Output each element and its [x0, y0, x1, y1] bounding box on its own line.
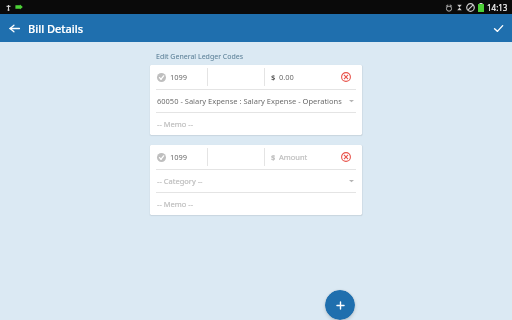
button[interactable]: Back: [0, 14, 28, 42]
button[interactable]: -- Memo --: [150, 193, 362, 215]
button[interactable]: 1099: [150, 65, 207, 89]
staticText: -- Category --: [157, 176, 349, 186]
staticText: $: [271, 72, 276, 82]
staticText: Edit General Ledger Codes: [156, 52, 244, 62]
button[interactable]: $: [265, 145, 335, 169]
button[interactable]: Add general ledger code: [325, 290, 355, 320]
button[interactable]: -- Category --: [150, 170, 362, 192]
staticText: -- Memo --: [157, 119, 194, 129]
button[interactable]: -- Memo --: [150, 113, 362, 135]
staticText: 60050 - Salary Expense : Salary Expense …: [157, 96, 349, 106]
staticText: Bill Details: [28, 21, 84, 36]
button[interactable]: 60050 - Salary Expense : Salary Expense …: [150, 90, 362, 112]
staticText: Amount: [279, 152, 308, 162]
staticText: $: [271, 152, 276, 162]
button[interactable]: Save: [484, 14, 512, 42]
staticText: 1099: [170, 152, 188, 162]
button[interactable]: 1099: [150, 145, 207, 169]
staticText: 0.00: [279, 72, 294, 82]
button[interactable]: Delete line: [335, 66, 357, 88]
staticText: 1099: [170, 72, 188, 82]
staticText: 14:13: [487, 2, 508, 13]
staticText: -- Memo --: [157, 199, 194, 209]
button[interactable]: $: [265, 65, 335, 89]
button[interactable]: Delete line: [335, 146, 357, 168]
